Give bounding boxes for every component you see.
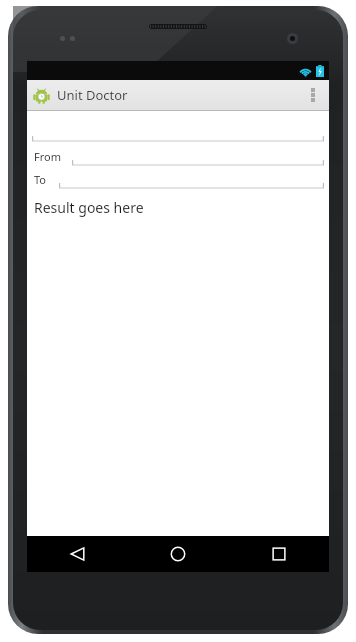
button[interactable] <box>59 172 324 189</box>
button[interactable]: Recent apps <box>228 536 329 572</box>
button[interactable]: More options <box>303 80 323 110</box>
button[interactable] <box>72 149 324 166</box>
staticText: To <box>34 172 59 187</box>
staticText: Result goes here <box>34 198 144 217</box>
staticText: Unit Doctor <box>57 86 128 104</box>
staticText: From <box>34 149 72 164</box>
button[interactable]: Home <box>127 536 228 572</box>
button[interactable]: Back <box>27 536 127 572</box>
